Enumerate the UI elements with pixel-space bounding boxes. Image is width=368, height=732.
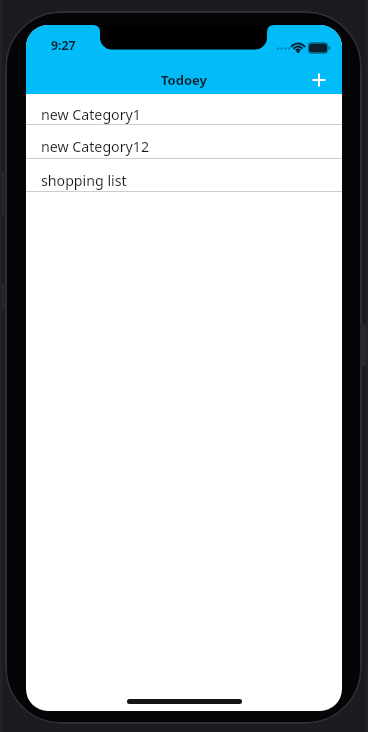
button[interactable]: new Category12 xyxy=(26,125,342,159)
button[interactable] xyxy=(302,65,336,95)
staticText: 9:27 xyxy=(51,37,76,54)
staticText: shopping list xyxy=(41,171,127,190)
staticText: new Category1 xyxy=(41,105,141,124)
staticText: new Category12 xyxy=(41,137,150,156)
button[interactable]: shopping list xyxy=(26,159,342,192)
staticText: Todoey xyxy=(161,71,207,89)
button[interactable]: new Category1 xyxy=(26,94,342,125)
